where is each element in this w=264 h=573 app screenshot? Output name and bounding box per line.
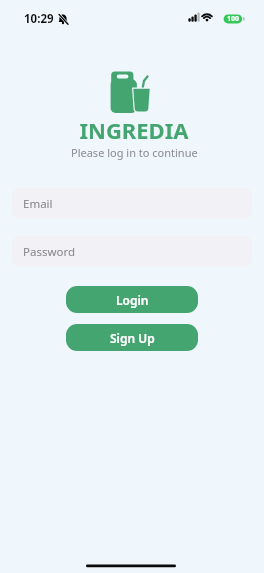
staticText: Login <box>116 292 149 308</box>
staticText: Password <box>23 244 76 260</box>
button[interactable]: Sign Up <box>66 324 198 351</box>
button[interactable]: Login <box>66 286 198 313</box>
staticText: Please log in to continue <box>71 145 198 160</box>
button[interactable]: Email <box>12 188 252 219</box>
staticText: INGREDIA <box>79 115 189 143</box>
button[interactable]: Password <box>12 236 252 267</box>
staticText: 10:29 <box>24 11 54 27</box>
staticText: Sign Up <box>110 330 155 346</box>
staticText: 100 <box>227 14 240 23</box>
staticText: Email <box>23 196 53 212</box>
